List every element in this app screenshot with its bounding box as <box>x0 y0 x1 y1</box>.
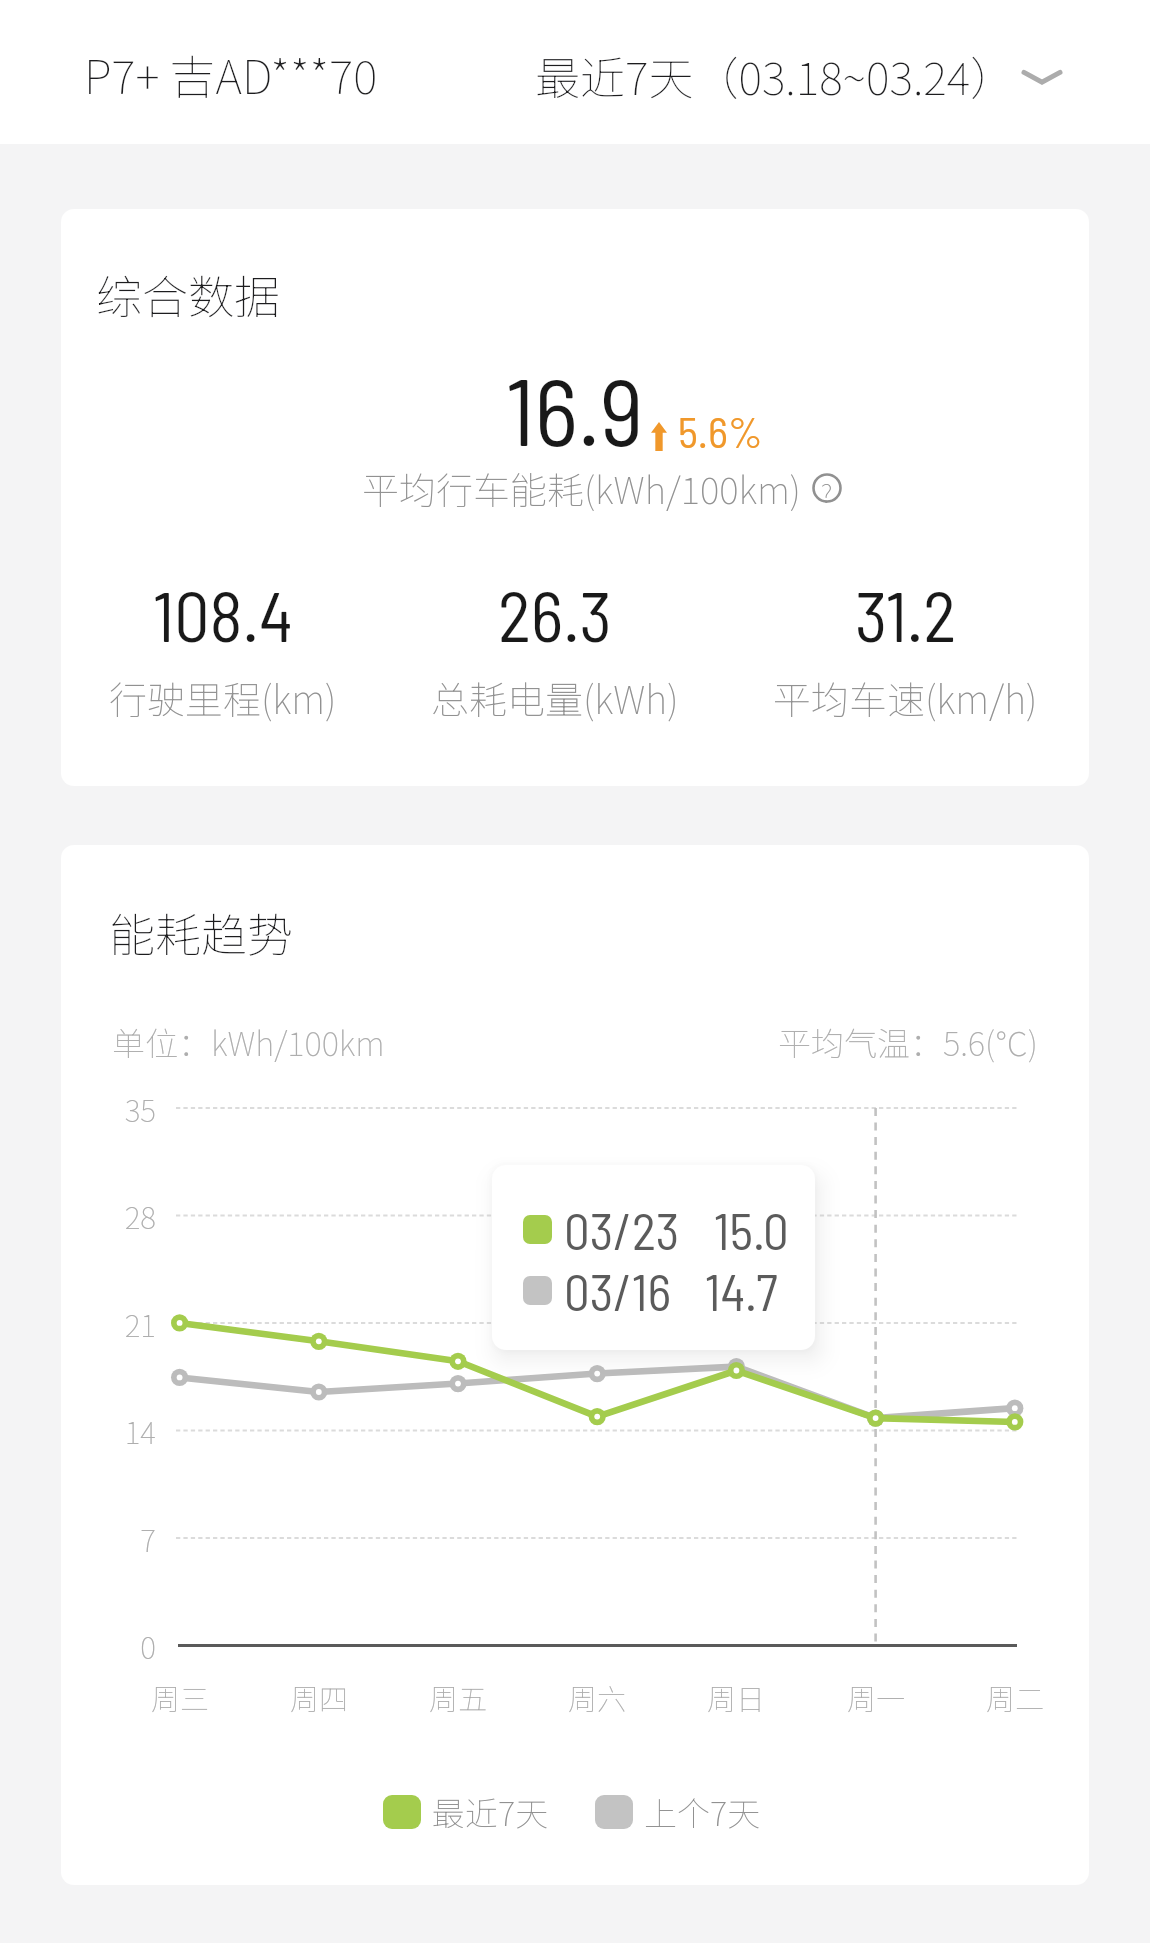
staticText: 单位：kWh/100km <box>112 1018 385 1066</box>
staticText: 0 <box>140 1624 156 1667</box>
button[interactable]: 108.4 <box>109 572 337 725</box>
staticText: 周二 <box>986 1676 1045 1718</box>
staticText: 最近7天 <box>432 1788 549 1836</box>
staticText: P7+ 吉AD***70 <box>84 41 378 108</box>
button[interactable]: 31.2 <box>773 572 1038 725</box>
staticText: 26.3 <box>498 572 612 656</box>
staticText: 平均气温：5.6(℃) <box>778 1018 1038 1066</box>
staticText: 周日 <box>707 1676 766 1718</box>
staticText: 周一 <box>847 1676 906 1718</box>
staticText: 108.4 <box>153 572 293 656</box>
staticText: 上个7天 <box>644 1788 761 1836</box>
staticText: 14.7 <box>705 1260 778 1321</box>
staticText: 15.0 <box>714 1199 789 1260</box>
staticText: 平均车速(km/h) <box>773 670 1038 725</box>
staticText: 周四 <box>290 1676 349 1718</box>
staticText: 28 <box>124 1194 156 1237</box>
staticText: 35 <box>124 1087 156 1130</box>
button[interactable]: 上个7天 <box>595 1788 761 1836</box>
button[interactable]: 选择日期范围 最近7天（03.18~03.24） <box>535 43 1062 108</box>
staticText: 03/23 <box>564 1199 680 1260</box>
button[interactable]: 说明 <box>812 473 842 503</box>
staticText: 周六 <box>568 1676 627 1718</box>
staticText: 平均行车能耗(kWh/100km) <box>362 461 801 515</box>
staticText: 31.2 <box>855 572 957 656</box>
staticText: 周三 <box>151 1676 210 1718</box>
staticText: 能耗趋势 <box>109 899 293 966</box>
staticText: ? <box>821 473 833 503</box>
button[interactable]: 26.3 <box>431 572 679 725</box>
staticText: 最近7天（03.18~03.24） <box>535 43 1016 108</box>
staticText: 5.6% <box>678 405 763 457</box>
staticText: 21 <box>124 1302 156 1345</box>
staticText: 03/16 <box>564 1260 671 1321</box>
staticText: 16.9 <box>506 352 644 465</box>
staticText: 综合数据 <box>96 261 280 328</box>
staticText: 14 <box>124 1409 156 1452</box>
staticText: 7 <box>140 1517 156 1560</box>
staticText: 行驶里程(km) <box>109 670 337 725</box>
button[interactable]: 最近7天 <box>383 1788 549 1836</box>
staticText: 周五 <box>429 1676 488 1718</box>
staticText: 总耗电量(kWh) <box>431 670 679 725</box>
